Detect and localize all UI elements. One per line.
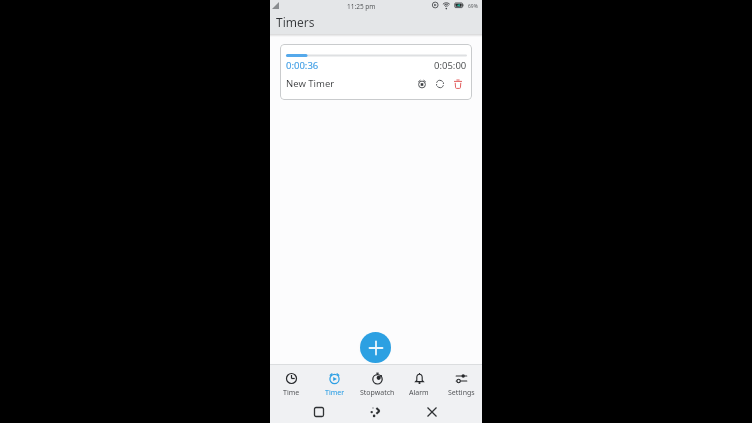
button[interactable]: Timer bbox=[313, 365, 356, 401]
staticText: Timers bbox=[276, 14, 315, 30]
staticText: Time bbox=[283, 388, 300, 398]
button[interactable]: Settings bbox=[440, 365, 482, 401]
button[interactable]: 0:00:36 bbox=[280, 44, 472, 100]
button[interactable] bbox=[368, 404, 384, 420]
staticText: 0:00:36 bbox=[286, 59, 319, 72]
staticText: Alarm bbox=[409, 388, 429, 398]
staticText: 0:05:00 bbox=[434, 59, 467, 72]
staticText: 11:25 pm bbox=[347, 2, 376, 11]
button[interactable] bbox=[311, 404, 327, 420]
button[interactable]: Alarm bbox=[398, 365, 440, 401]
staticText: 69% bbox=[468, 3, 478, 10]
staticText: Stopwatch bbox=[360, 388, 395, 398]
button[interactable] bbox=[435, 79, 445, 89]
staticText: Settings bbox=[448, 388, 475, 398]
button[interactable] bbox=[424, 404, 440, 420]
button[interactable] bbox=[417, 79, 427, 89]
button[interactable] bbox=[360, 332, 391, 363]
button[interactable]: Stopwatch bbox=[356, 365, 398, 401]
button[interactable]: Time bbox=[270, 365, 313, 401]
button[interactable] bbox=[453, 79, 463, 89]
staticText: Timer bbox=[325, 388, 345, 398]
staticText: New Timer bbox=[286, 77, 335, 90]
